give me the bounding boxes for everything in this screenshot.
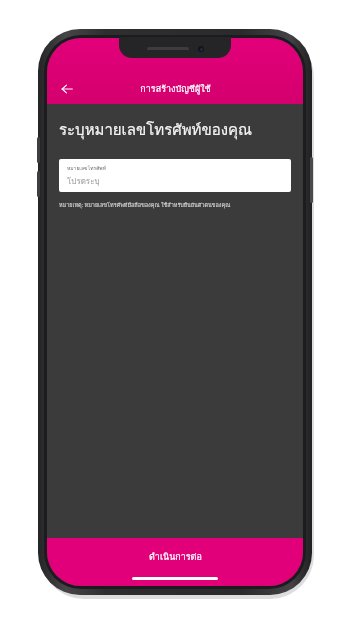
staticText: หมายเลขโทรศัพท์: [67, 164, 106, 172]
staticText: ระบุหมายเลขโทรศัพท์ของคุณ: [59, 118, 253, 142]
button[interactable]: หมายเลขโทรศัพท์: [59, 159, 291, 192]
staticText: หมายเหตุ: หมายเลขโทรศัพท์มือถือของคุณ ใช…: [59, 201, 231, 210]
staticText: การสร้างบัญชีผู้ใช้: [140, 82, 211, 96]
button[interactable]: Back: [54, 76, 80, 102]
button[interactable]: ดำเนินการต่อ: [47, 538, 303, 586]
staticText: ดำเนินการต่อ: [149, 550, 202, 564]
staticText: โปรดระบุ: [67, 175, 100, 188]
